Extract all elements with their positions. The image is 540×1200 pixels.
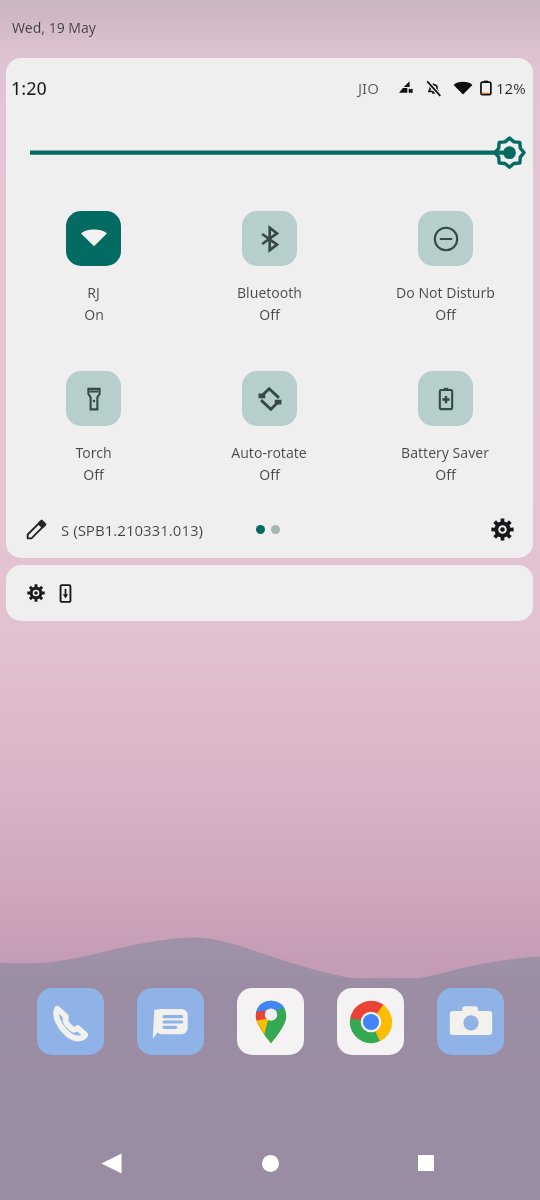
staticText: Auto-rotate (231, 443, 307, 462)
button[interactable]: Install update (52, 580, 78, 606)
staticText: Battery Saver (401, 443, 489, 462)
button[interactable]: Battery Saver (357, 371, 533, 484)
staticText: On (84, 305, 104, 324)
button[interactable]: Home (244, 1137, 296, 1189)
button[interactable]: Auto-rotate (181, 371, 357, 484)
staticText: Torch (75, 443, 112, 462)
staticText: RJ (87, 283, 100, 302)
staticText: Wed, 19 May (12, 18, 96, 37)
button[interactable]: Settings (23, 580, 49, 606)
button[interactable]: Back (85, 1137, 137, 1189)
staticText: 12% (496, 78, 526, 98)
button[interactable]: Chrome (337, 988, 404, 1055)
staticText: Off (435, 465, 456, 484)
staticText: Off (83, 465, 104, 484)
button[interactable]: Phone (37, 988, 104, 1055)
staticText: Off (259, 305, 280, 324)
button[interactable]: Do Not Disturb (357, 211, 533, 324)
button[interactable]: Edit tiles (26, 519, 204, 540)
button[interactable]: Torch (6, 371, 181, 484)
button[interactable]: Settings (485, 512, 519, 546)
button[interactable]: Messages (137, 988, 204, 1055)
button[interactable]: Recents (400, 1137, 452, 1189)
button[interactable]: Camera (437, 988, 504, 1055)
button[interactable]: Brightness (6, 123, 533, 183)
button[interactable]: Maps (237, 988, 304, 1055)
button[interactable]: RJ (6, 211, 181, 324)
staticText: Bluetooth (237, 283, 302, 302)
staticText: S (SPB1.210331.013) (61, 520, 204, 540)
button[interactable]: Bluetooth (181, 211, 357, 324)
staticText: Do Not Disturb (396, 283, 495, 302)
staticText: Off (259, 465, 280, 484)
staticText: JIO (358, 78, 379, 98)
staticText: 1:20 (11, 76, 47, 101)
staticText: Off (435, 305, 456, 324)
